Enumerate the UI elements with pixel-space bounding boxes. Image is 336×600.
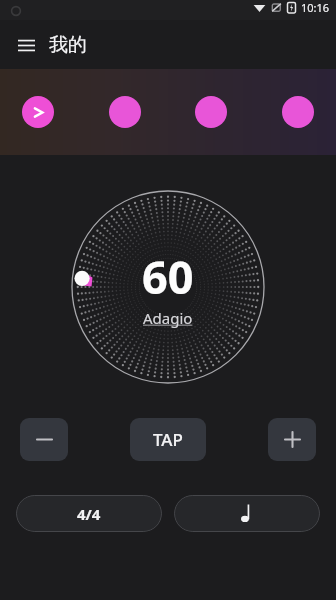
button[interactable]: Beat 1	[22, 96, 54, 128]
button[interactable]: Decrease tempo	[20, 418, 68, 461]
button[interactable]: Beat 2	[109, 96, 141, 128]
button[interactable]: Beat 3	[195, 96, 227, 128]
staticText: 10:16	[301, 0, 330, 15]
button[interactable]: 4/4	[16, 495, 162, 532]
button[interactable]: Tempo dial, 60 BPM, Adagio	[70, 189, 266, 385]
staticText: TAP	[153, 428, 183, 451]
staticText: 4/4	[77, 504, 101, 524]
staticText: Adagio	[143, 308, 193, 328]
staticText: 60	[142, 246, 194, 307]
staticText: 我的	[49, 33, 87, 57]
button[interactable]: Open navigation menu	[13, 32, 39, 58]
button[interactable]: TAP	[130, 418, 206, 461]
button[interactable]: Increase tempo	[268, 418, 316, 461]
button[interactable]: Beat 4	[282, 96, 314, 128]
button[interactable]: Note subdivision, quarter note	[174, 495, 320, 532]
